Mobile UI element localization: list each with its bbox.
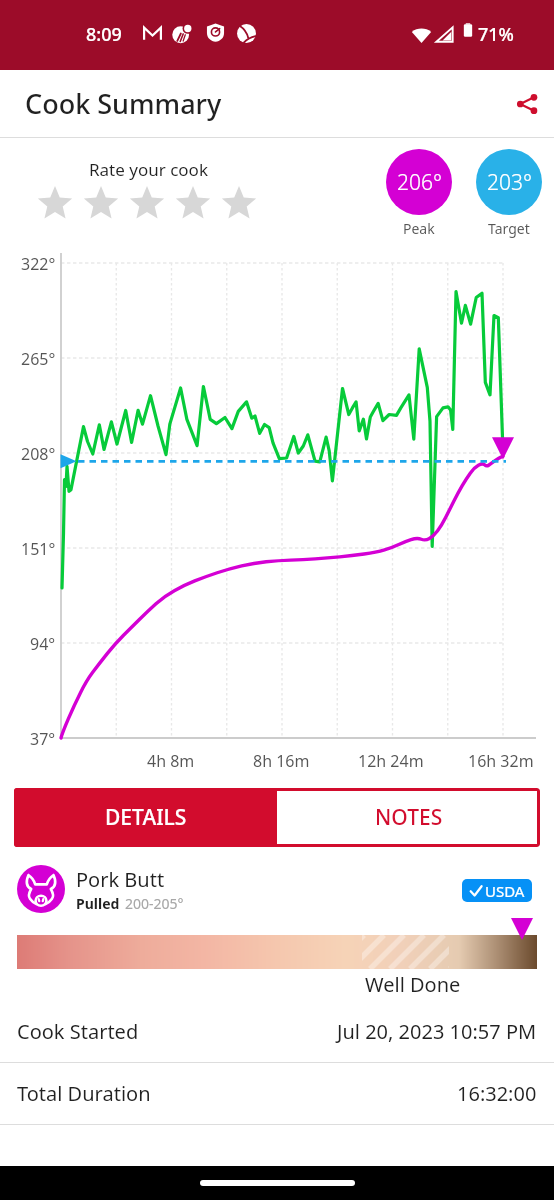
button[interactable]: Rate 4 stars [170, 181, 216, 227]
staticText: 151° [21, 538, 56, 560]
staticText: 8:09 [86, 22, 122, 47]
button[interactable]: Rate 3 stars [124, 181, 170, 227]
button[interactable]: DETAILS [14, 788, 277, 847]
staticText: 8h 16m [253, 750, 310, 772]
staticText: 208° [21, 443, 56, 465]
staticText: 16h 32m [468, 750, 534, 772]
staticText: 12h 24m [358, 750, 424, 772]
staticText: DETAILS [105, 803, 187, 832]
button[interactable]: Rate 2 stars [78, 181, 124, 227]
staticText: Total Duration [17, 1080, 151, 1107]
button[interactable]: Total Duration [0, 1063, 554, 1124]
staticText: Rate your cook [89, 158, 208, 181]
staticText: 203° [487, 168, 532, 197]
staticText: 200-205° [125, 894, 184, 913]
staticText: 322° [21, 253, 56, 275]
staticText: 4h 8m [147, 750, 195, 772]
staticText: Cook Started [17, 1018, 139, 1045]
staticText: Pork Butt [76, 866, 165, 893]
staticText: Jul 20, 2023 10:57 PM [337, 1018, 537, 1045]
button[interactable]: Doneness [0, 935, 554, 1001]
staticText: 265° [21, 348, 56, 370]
staticText: Well Done [365, 971, 461, 998]
staticText: 71% [478, 22, 514, 47]
button[interactable]: Share [503, 80, 551, 128]
button[interactable]: Rate 5 stars [216, 181, 262, 227]
staticText: 94° [30, 633, 56, 655]
button[interactable]: 206° [386, 149, 452, 238]
staticText: USDA [485, 881, 525, 901]
staticText: Target [488, 219, 530, 238]
staticText: 206° [397, 168, 442, 197]
button[interactable]: Rate 1 stars [32, 181, 78, 227]
button[interactable]: 203° [476, 149, 542, 238]
button[interactable]: Cook Started [0, 1001, 554, 1062]
staticText: Cook Summary [25, 85, 222, 122]
staticText: 37° [30, 728, 56, 750]
staticText: Pulled [76, 894, 120, 913]
staticText: NOTES [375, 803, 443, 832]
staticText: 16:32:00 [457, 1080, 537, 1107]
staticText: Peak [403, 219, 435, 238]
button[interactable]: NOTES [277, 788, 540, 847]
button[interactable]: Pork Butt [17, 865, 184, 913]
button[interactable]: USDA [462, 879, 532, 902]
